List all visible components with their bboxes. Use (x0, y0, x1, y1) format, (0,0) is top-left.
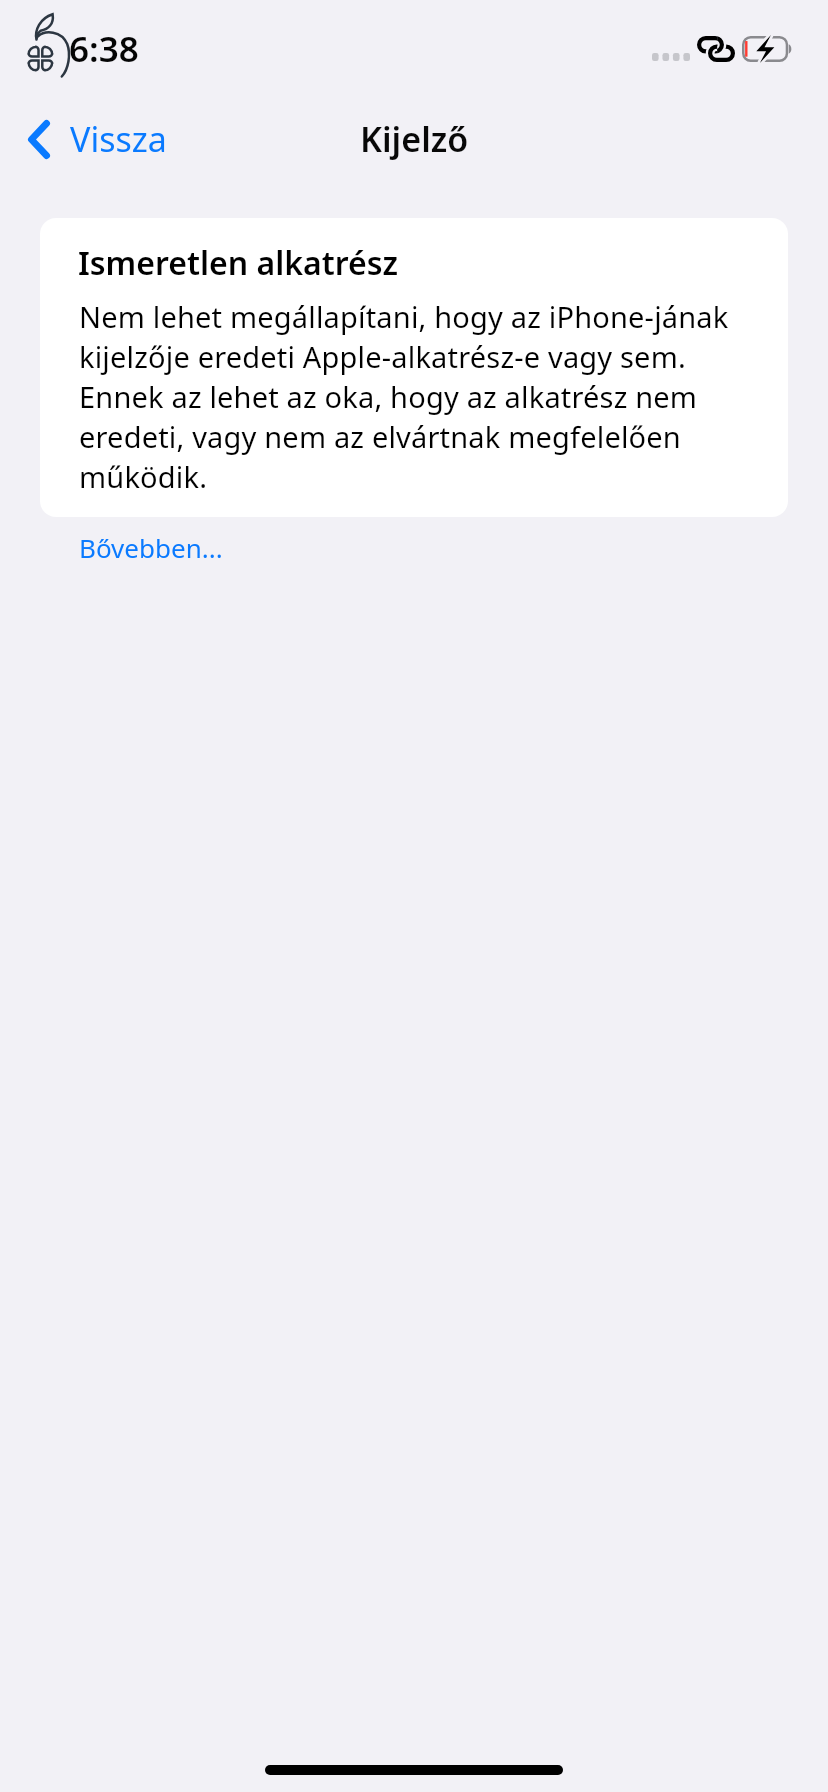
staticText: Ismeretlen alkatrész (78, 242, 399, 284)
staticText: Nem lehet megállapítani, hogy az iPhone-… (79, 297, 753, 497)
button[interactable]: Ismeretlen alkatrész (40, 218, 788, 517)
staticText: 6:38 (69, 26, 139, 72)
other: Battery charging (742, 36, 795, 62)
staticText: Kijelző (360, 117, 469, 161)
staticText: Bővebben... (79, 530, 223, 566)
button[interactable]: Bővebben... (55, 518, 247, 578)
other: Link (697, 36, 735, 62)
staticText: Vissza (70, 117, 167, 161)
button[interactable]: Back (16, 108, 177, 170)
other: Back (28, 120, 50, 159)
